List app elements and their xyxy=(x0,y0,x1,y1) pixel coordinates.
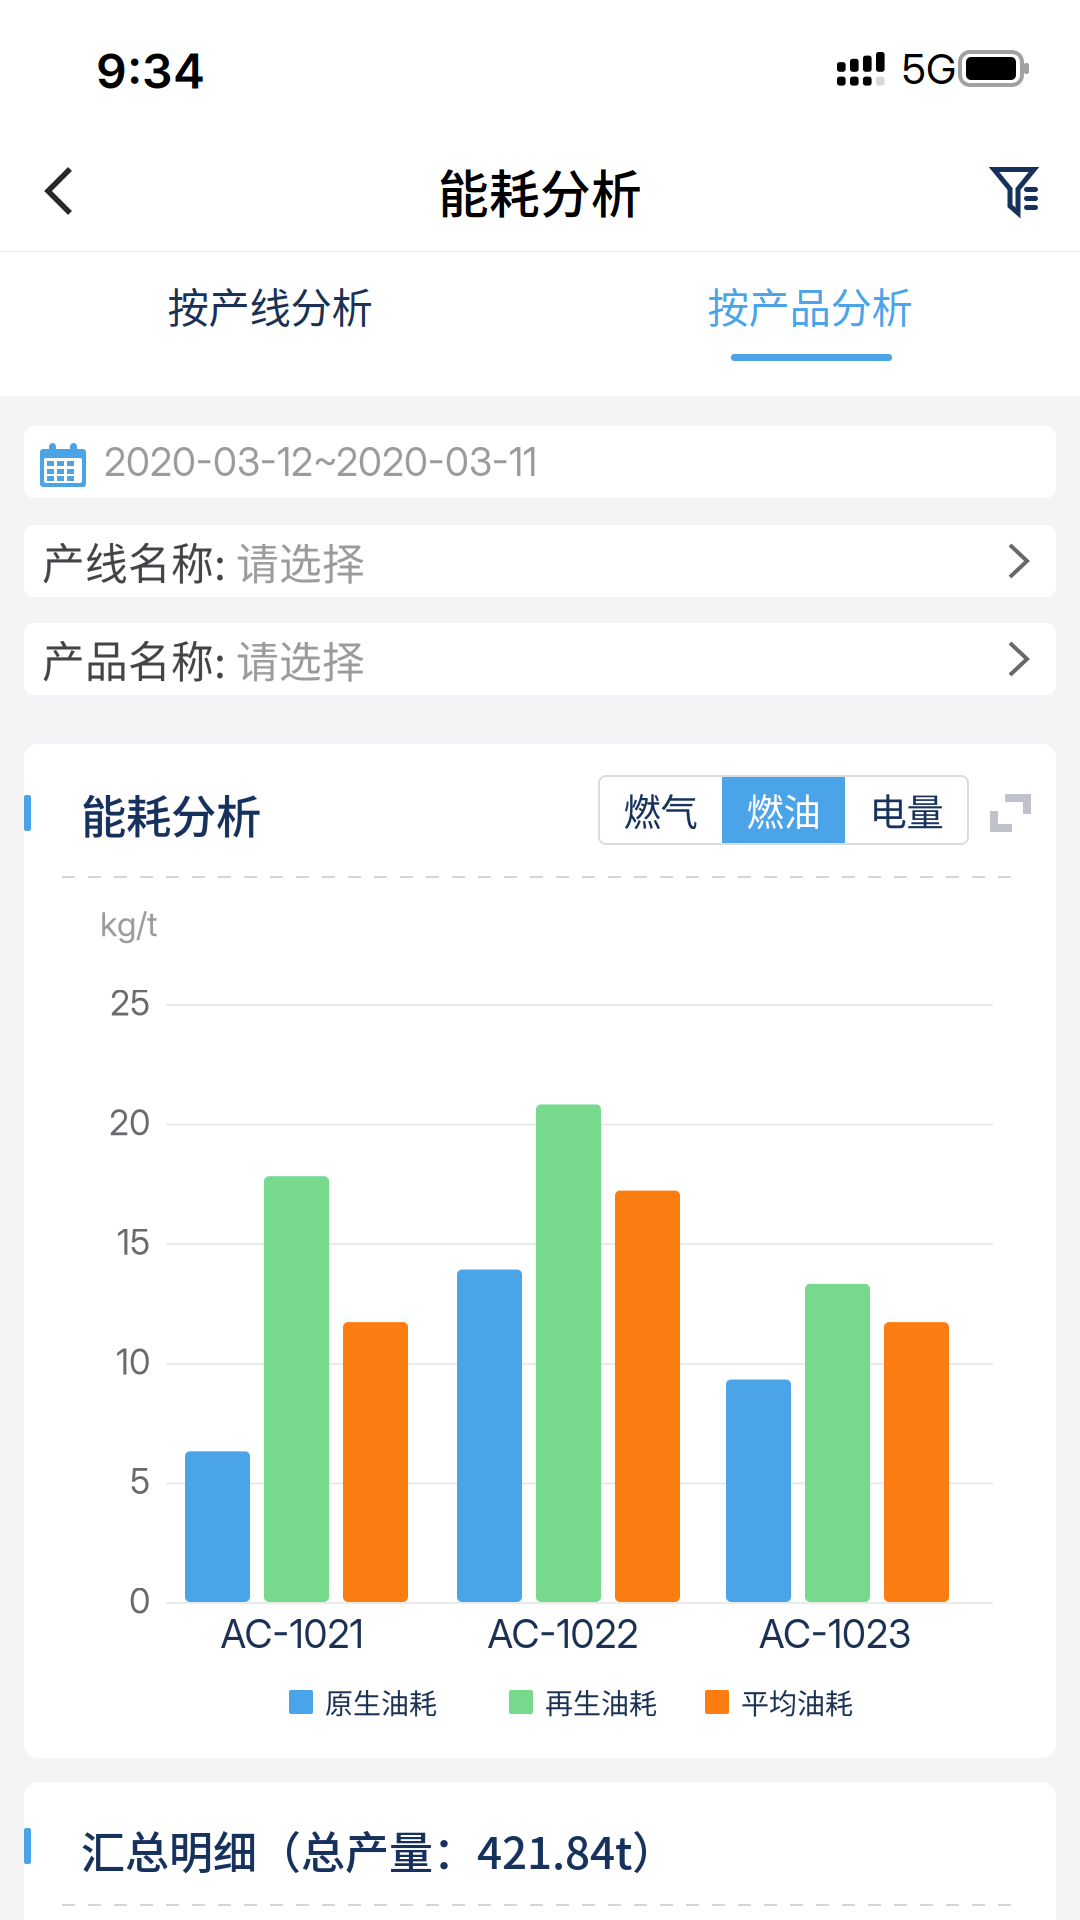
staticText: 能耗分析 xyxy=(81,781,261,847)
button[interactable]: Fullscreen xyxy=(978,784,1058,852)
staticText: 请选择 xyxy=(226,628,365,690)
staticText: 产线名称: xyxy=(42,530,226,592)
staticText: 0 xyxy=(129,1580,150,1622)
staticText: 平均油耗 xyxy=(741,1682,853,1722)
staticText: 原生油耗 xyxy=(325,1682,437,1722)
staticText: 20 xyxy=(109,1102,150,1143)
staticText: 请选择 xyxy=(226,530,365,592)
staticText: 燃气 xyxy=(623,783,697,837)
button[interactable]: 燃油 xyxy=(722,776,845,844)
button[interactable]: 燃气 xyxy=(599,776,722,844)
button[interactable]: 产品名称: xyxy=(24,623,1056,695)
staticText: 能耗分析 xyxy=(438,154,642,228)
staticText: 燃油 xyxy=(746,783,820,837)
staticText: 再生油耗 xyxy=(545,1682,657,1722)
button[interactable]: 按产线分析 xyxy=(0,252,540,394)
button[interactable]: Filter xyxy=(972,143,1064,239)
staticText: 汇总明细（总产量：421.84t） xyxy=(81,1818,676,1882)
staticText: 5 xyxy=(130,1460,150,1502)
staticText: kg/t xyxy=(100,904,158,944)
staticText: AC-1021 xyxy=(220,1611,363,1657)
button[interactable]: 电量 xyxy=(845,776,968,844)
staticText: 按产品分析 xyxy=(707,275,912,335)
staticText: 5G xyxy=(902,44,956,94)
staticText: 电量 xyxy=(869,783,943,837)
staticText: 15 xyxy=(117,1221,150,1263)
staticText: 25 xyxy=(110,982,150,1024)
button[interactable]: Back xyxy=(19,151,111,247)
staticText: 2020-03-12~2020-03-11 xyxy=(104,439,537,485)
staticText: AC-1023 xyxy=(759,1611,911,1657)
staticText: 产品名称: xyxy=(42,628,226,690)
staticText: 按产线分析 xyxy=(167,275,372,335)
staticText: 10 xyxy=(116,1341,150,1383)
staticText: AC-1022 xyxy=(487,1611,638,1657)
button[interactable]: 产线名称: xyxy=(24,525,1056,597)
staticText: 9:34 xyxy=(96,42,205,100)
button[interactable]: 2020-03-12~2020-03-11 xyxy=(24,426,1056,498)
button[interactable]: 按产品分析 xyxy=(540,252,1080,394)
